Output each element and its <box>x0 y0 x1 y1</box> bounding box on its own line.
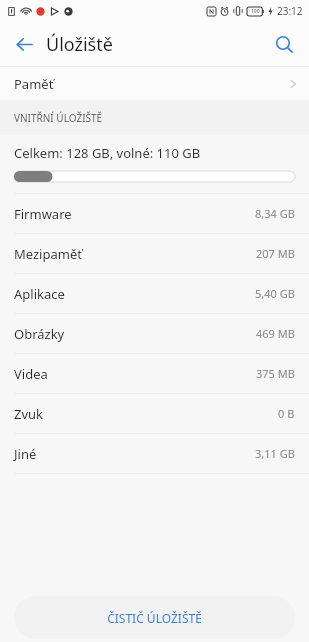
staticText: 207 MB <box>256 246 295 261</box>
button[interactable]: Firmware <box>0 194 309 233</box>
button[interactable]: Videa <box>0 354 309 393</box>
staticText: 8,34 GB <box>255 206 295 221</box>
staticText: Obrázky <box>14 325 256 343</box>
staticText: Úložiště <box>46 32 113 57</box>
button[interactable]: ČISTIČ ÚLOŽIŠTĚ <box>14 596 295 639</box>
staticText: ČISTIČ ÚLOŽIŠTĚ <box>107 610 202 626</box>
button[interactable]: Back <box>8 28 40 60</box>
staticText: 3,11 GB <box>255 446 295 461</box>
staticText: Videa <box>14 365 256 383</box>
staticText: 5,40 GB <box>255 286 295 301</box>
staticText: 0 B <box>278 406 295 421</box>
staticText: Paměť <box>14 75 290 93</box>
button[interactable]: Aplikace <box>0 274 309 313</box>
staticText: Jiné <box>14 445 255 463</box>
staticText: Aplikace <box>14 285 255 303</box>
staticText: Zvuk <box>14 405 278 423</box>
staticText: Mezipaměť <box>14 245 256 263</box>
staticText: 469 MB <box>256 326 295 341</box>
staticText: 375 MB <box>256 366 295 381</box>
button[interactable]: Paměť <box>0 67 309 100</box>
button[interactable]: Search <box>267 27 301 61</box>
staticText: Celkem: 128 GB, volné: 110 GB <box>14 144 201 162</box>
staticText: 100 <box>251 8 260 15</box>
button[interactable]: Mezipaměť <box>0 234 309 273</box>
button[interactable]: Obrázky <box>0 314 309 353</box>
staticText: Firmware <box>14 205 255 223</box>
staticText: VNITŘNÍ ÚLOŽIŠTĚ <box>14 111 103 125</box>
button[interactable]: Jiné <box>0 434 309 473</box>
staticText: 23:12 <box>277 4 303 18</box>
button[interactable]: Zvuk <box>0 394 309 433</box>
